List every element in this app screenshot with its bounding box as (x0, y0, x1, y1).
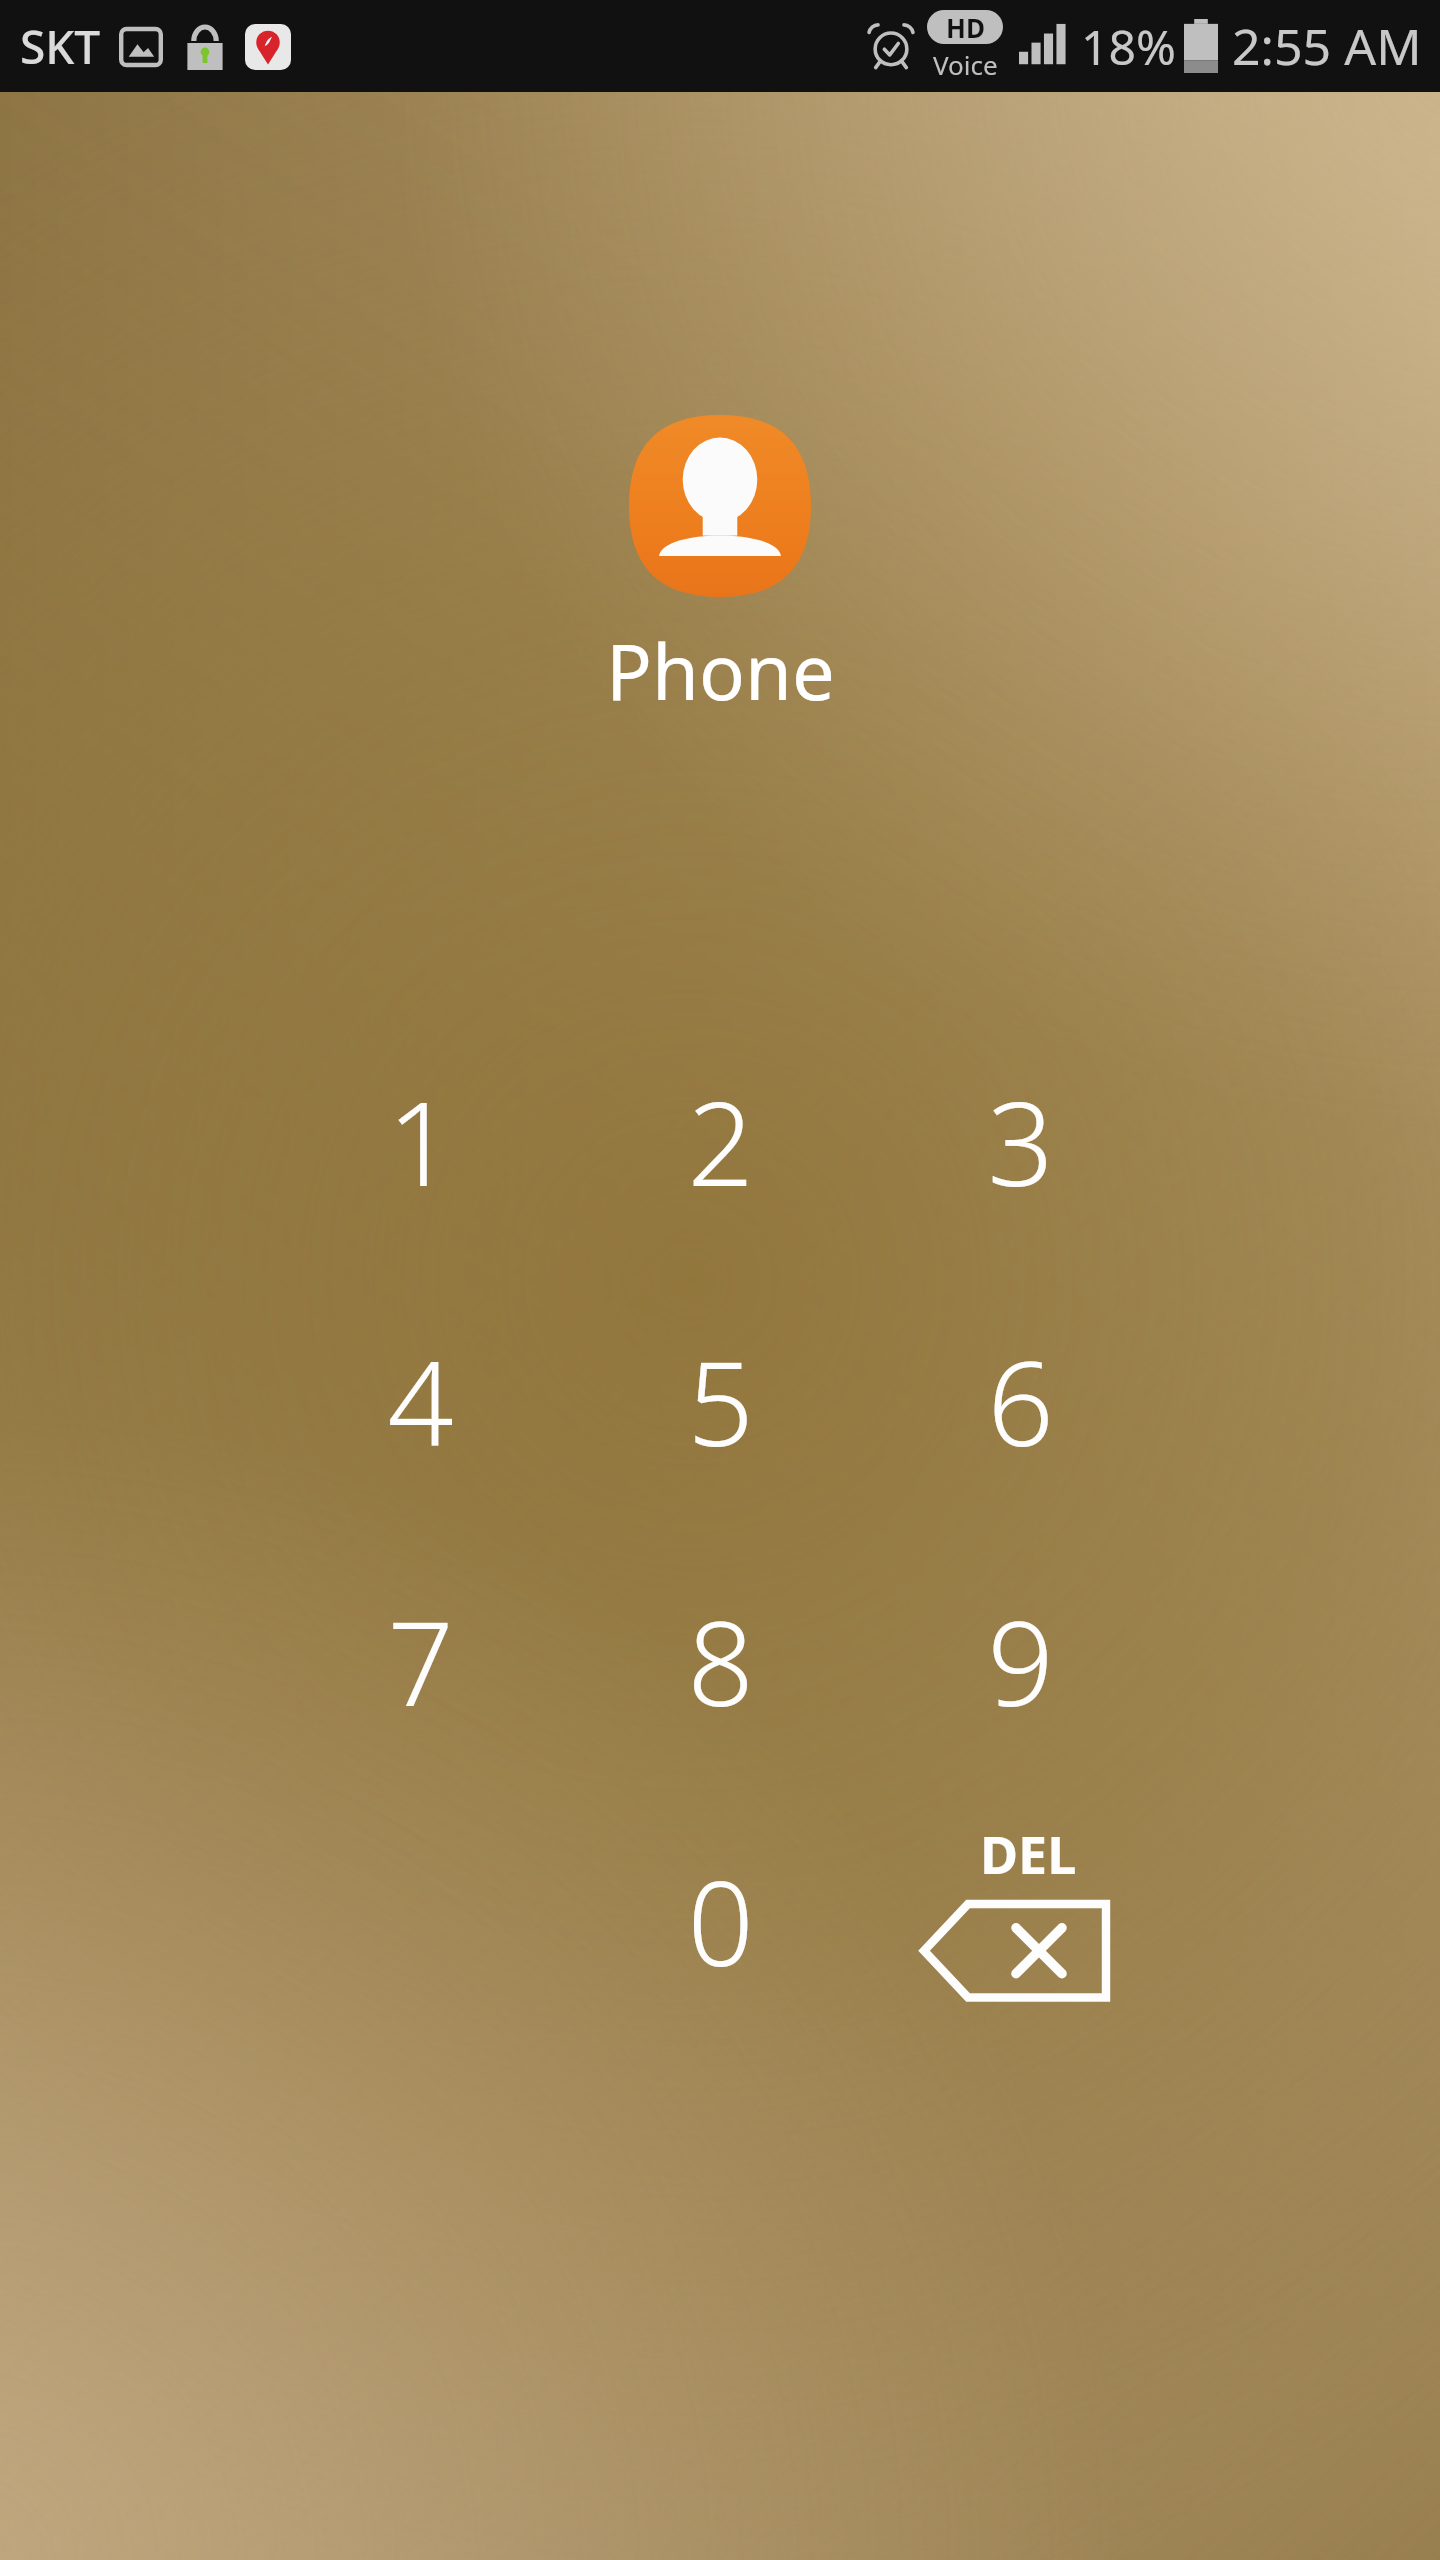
staticText: DEL (980, 1818, 1077, 1889)
staticText: SKT (20, 15, 101, 78)
button[interactable]: 3 (870, 1011, 1170, 1271)
button[interactable]: 0 (570, 1791, 870, 2051)
staticText: 9 (987, 1582, 1054, 1740)
staticText: Phone (606, 619, 835, 723)
button[interactable]: 4 (270, 1271, 570, 1531)
staticText: 3 (987, 1062, 1054, 1220)
staticText: 2:55 AM (1232, 12, 1422, 80)
staticText: 1 (387, 1062, 454, 1220)
button[interactable]: 2 (570, 1011, 870, 1271)
staticText: 5 (687, 1322, 754, 1480)
staticText: 8 (687, 1582, 754, 1740)
staticText: Voice (933, 47, 998, 82)
staticText: 4 (387, 1322, 454, 1480)
button[interactable]: 1 (270, 1011, 570, 1271)
staticText: 0 (687, 1842, 754, 2000)
button[interactable]: 6 (870, 1271, 1170, 1531)
button[interactable]: 7 (270, 1531, 570, 1791)
other: Phone app icon (629, 415, 811, 597)
staticText: 18% (1081, 14, 1176, 79)
staticText: HD (946, 10, 985, 44)
staticText: 7 (387, 1582, 454, 1740)
button[interactable]: 8 (570, 1531, 870, 1791)
staticText: 6 (987, 1322, 1054, 1480)
staticText: 2 (687, 1062, 754, 1220)
button[interactable]: 9 (870, 1531, 1170, 1791)
button[interactable]: Delete (870, 1791, 1170, 2051)
button[interactable]: 5 (570, 1271, 870, 1531)
